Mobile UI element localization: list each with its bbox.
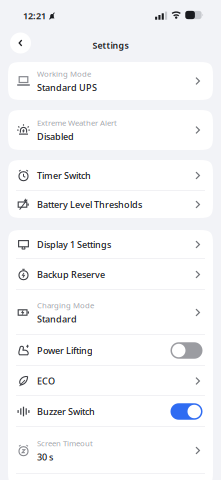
staticText: 12:21	[23, 10, 46, 22]
button[interactable]: Working Mode	[8, 62, 213, 100]
button[interactable]: Back	[10, 32, 31, 53]
button[interactable]: Buzzer Switch	[8, 396, 213, 427]
button[interactable]: Backup Reserve	[8, 259, 213, 290]
staticText: Timer Switch	[37, 170, 91, 181]
button[interactable]: ECO	[8, 366, 213, 396]
button[interactable]: Charging Mode	[8, 290, 213, 335]
staticText: 30 s	[37, 451, 53, 463]
button[interactable]: Display 1 Settings	[8, 230, 213, 259]
staticText: Standard UPS	[37, 82, 97, 93]
staticText: Buzzer Switch	[37, 406, 95, 417]
staticText: Charging Mode	[37, 300, 94, 310]
staticText: Disabled	[37, 131, 74, 142]
staticText: Power Lifting	[37, 345, 93, 356]
staticText: Extreme Weather Alert	[37, 118, 117, 128]
button[interactable]: Screen Timeout	[8, 427, 213, 474]
staticText: Standard	[37, 313, 77, 325]
staticText: Screen Timeout	[37, 438, 93, 448]
button[interactable]: Power Lifting	[8, 335, 213, 366]
button[interactable]: Timer Switch	[8, 160, 213, 191]
staticText: ECO	[37, 375, 55, 387]
staticText: Settings	[92, 40, 128, 51]
staticText: Battery Level Thresholds	[37, 199, 142, 210]
button[interactable]: Extreme Weather Alert	[8, 110, 213, 150]
button[interactable]: Battery Level Thresholds	[8, 191, 213, 218]
staticText: Display 1 Settings	[37, 239, 111, 250]
staticText: Backup Reserve	[37, 269, 105, 280]
staticText: Working Mode	[37, 69, 91, 79]
